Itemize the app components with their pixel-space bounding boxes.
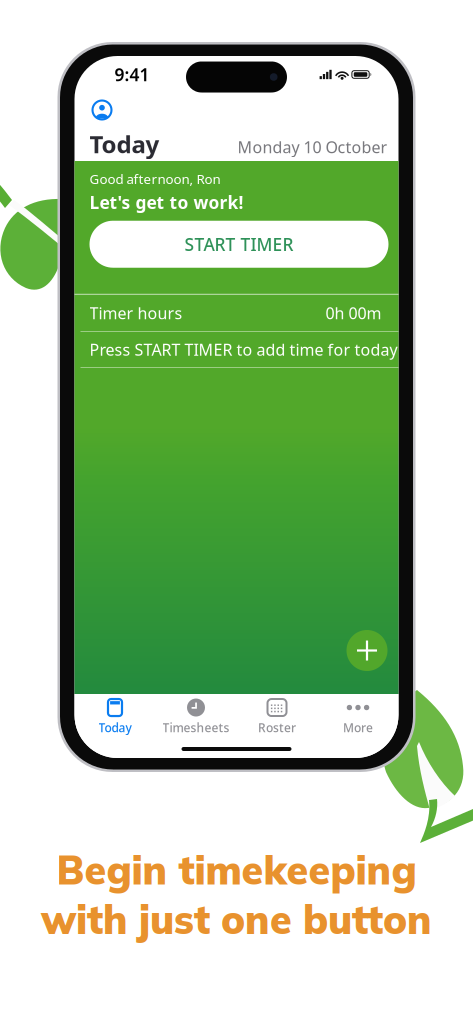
- button[interactable]: Add entry: [346, 630, 387, 671]
- staticText: Let's get to work!: [89, 191, 243, 214]
- staticText: Timesheets: [162, 719, 229, 735]
- staticText: Timer hours: [89, 302, 182, 324]
- staticText: Monday 10 October: [237, 136, 387, 158]
- staticText: with just one button: [41, 894, 432, 944]
- staticText: Roster: [258, 719, 296, 735]
- staticText: 0h 00m: [325, 302, 381, 324]
- staticText: Press START TIMER to add time for today: [89, 339, 397, 360]
- button[interactable]: Timesheets: [155, 694, 236, 740]
- staticText: START TIMER: [184, 233, 293, 256]
- button[interactable]: Roster: [236, 694, 317, 740]
- staticText: More: [343, 719, 373, 735]
- staticText: 9:41: [114, 63, 149, 86]
- staticText: Today: [98, 719, 131, 735]
- button[interactable]: Today: [74, 694, 155, 740]
- button[interactable]: START TIMER: [89, 221, 388, 268]
- staticText: Today: [89, 128, 159, 160]
- staticText: Begin timekeeping: [56, 845, 416, 894]
- button[interactable]: More: [317, 694, 398, 740]
- staticText: Good afternoon, Ron: [89, 170, 220, 188]
- button[interactable]: Profile: [86, 94, 117, 125]
